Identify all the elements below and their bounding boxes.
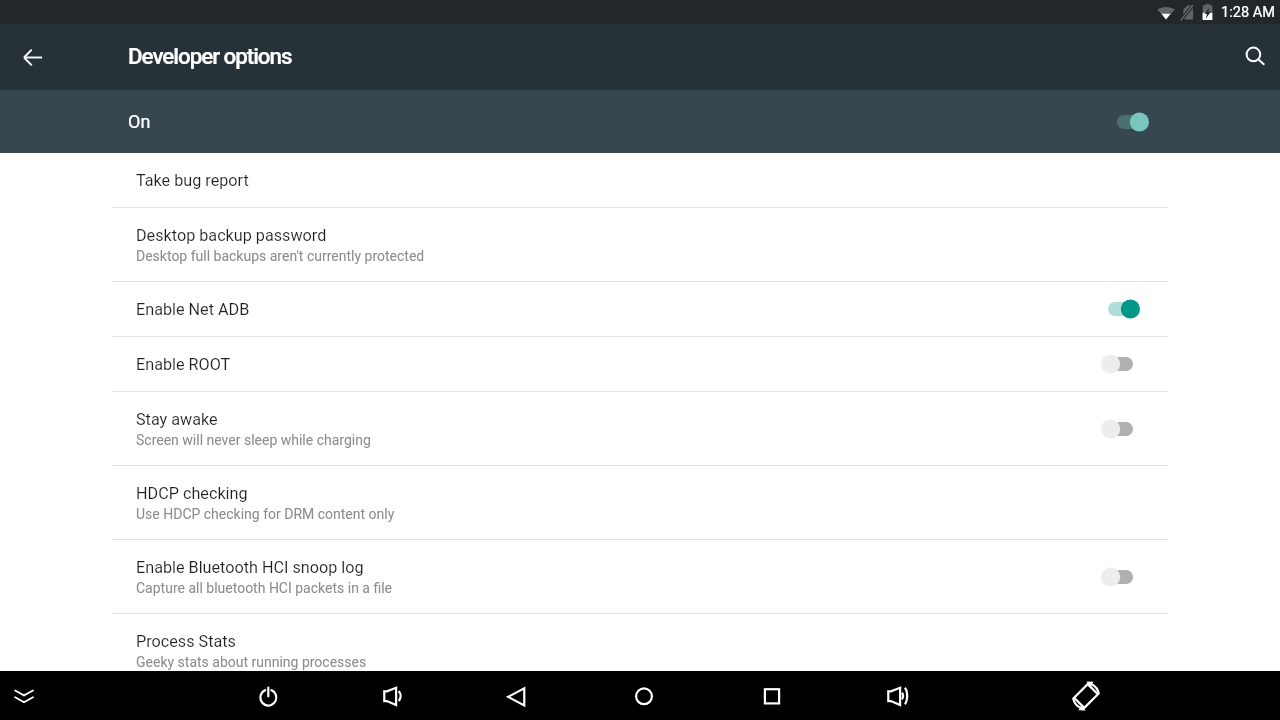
button[interactable]: Take bug report (0, 153, 1280, 207)
staticText: Use HDCP checking for DRM content only (136, 506, 395, 522)
button[interactable]: Rotate (1060, 671, 1112, 720)
button[interactable]: Volume down (366, 671, 418, 720)
staticText: Enable ROOT (136, 355, 231, 374)
button[interactable]: Process Stats (0, 614, 1280, 669)
button[interactable]: Stay awake (0, 392, 1280, 465)
staticText: 1:28 AM (1221, 3, 1276, 20)
staticText: Capture all bluetooth HCI packets in a f… (136, 580, 393, 596)
staticText: Stay awake (136, 410, 218, 429)
staticText: Process Stats (136, 632, 236, 651)
staticText: Screen will never sleep while charging (136, 432, 371, 448)
button[interactable]: Power (242, 671, 294, 720)
staticText: Enable Bluetooth HCI snoop log (136, 558, 364, 577)
staticText: Enable Net ADB (136, 300, 250, 319)
button[interactable]: Back (0, 24, 64, 90)
button[interactable]: Search (1232, 24, 1280, 90)
button[interactable]: Home (618, 671, 670, 720)
staticText: Desktop full backups aren't currently pr… (136, 248, 425, 264)
staticText: Developer options (128, 43, 292, 69)
button[interactable]: Back (490, 671, 542, 720)
button[interactable]: Expand notifications (0, 671, 50, 720)
button[interactable]: Enable Bluetooth HCI snoop log (0, 540, 1280, 613)
button[interactable]: On (0, 90, 1280, 153)
button[interactable]: Volume up (870, 671, 922, 720)
staticText: Desktop backup password (136, 226, 327, 245)
button[interactable]: Enable ROOT (0, 337, 1280, 391)
button[interactable]: Desktop backup password (0, 208, 1280, 281)
staticText: Geeky stats about running processes (136, 654, 367, 670)
button[interactable]: Enable Net ADB (0, 282, 1280, 336)
staticText: Take bug report (136, 171, 249, 190)
button[interactable]: HDCP checking (0, 466, 1280, 539)
staticText: HDCP checking (136, 484, 248, 503)
button[interactable]: Recents (746, 671, 798, 720)
staticText: On (128, 111, 151, 132)
